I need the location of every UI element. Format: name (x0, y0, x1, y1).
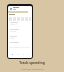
button[interactable]: Navigate (21, 52, 25, 56)
staticText: Track spending (19, 60, 45, 65)
staticText: Everyday budgeting (21, 67, 44, 70)
button[interactable]: Navigate (26, 52, 30, 56)
button[interactable]: Navigate (15, 52, 19, 56)
button[interactable]: Navigate (10, 52, 14, 56)
button[interactable] (10, 7, 19, 10)
